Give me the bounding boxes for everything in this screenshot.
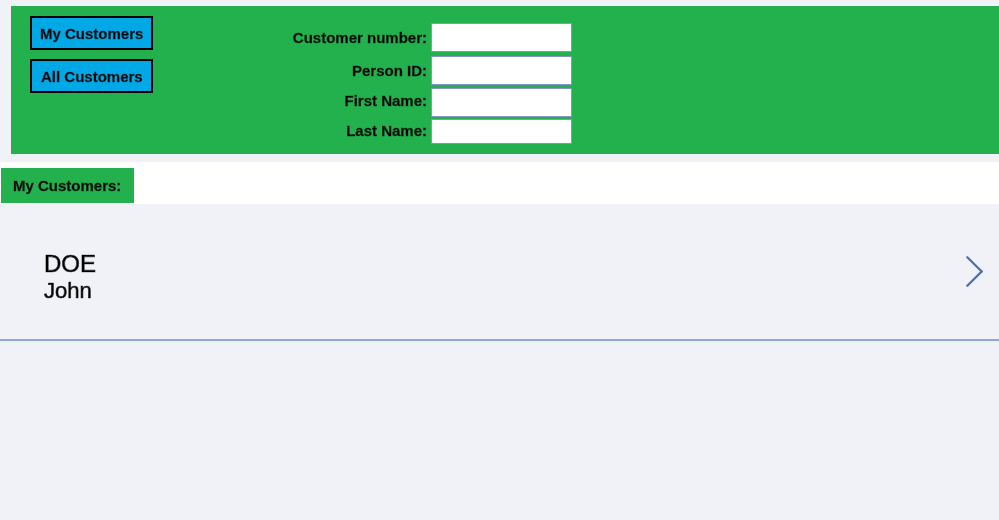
- staticText: All Customers: [41, 68, 143, 85]
- staticText: My Customers: [40, 25, 144, 42]
- staticText: Person ID:: [267, 62, 427, 79]
- staticText: Customer number:: [267, 29, 427, 46]
- button[interactable]: [431, 119, 572, 144]
- button[interactable]: All Customers: [30, 59, 153, 93]
- staticText: My Customers:: [13, 177, 122, 194]
- button[interactable]: My Customers:: [1, 168, 134, 203]
- staticText: All Customers: [41, 68, 143, 85]
- button[interactable]: [431, 88, 572, 117]
- button[interactable]: Open customer details: [966, 256, 983, 287]
- staticText: Last Name:: [267, 122, 427, 139]
- button[interactable]: [431, 56, 572, 85]
- staticText: John: [44, 278, 92, 303]
- button[interactable]: My Customers: [30, 16, 153, 50]
- staticText: DOE: [44, 250, 97, 277]
- staticText: Customer number:: [267, 29, 427, 46]
- staticText: Person ID:: [267, 62, 427, 79]
- staticText: John: [44, 278, 92, 303]
- staticText: My Customers:: [13, 177, 122, 194]
- staticText: DOE: [44, 250, 97, 277]
- staticText: First Name:: [267, 92, 427, 109]
- staticText: First Name:: [267, 92, 427, 109]
- button[interactable]: DOE: [0, 204, 999, 339]
- staticText: My Customers: [40, 25, 144, 42]
- button[interactable]: [431, 23, 572, 52]
- staticText: Last Name:: [267, 122, 427, 139]
